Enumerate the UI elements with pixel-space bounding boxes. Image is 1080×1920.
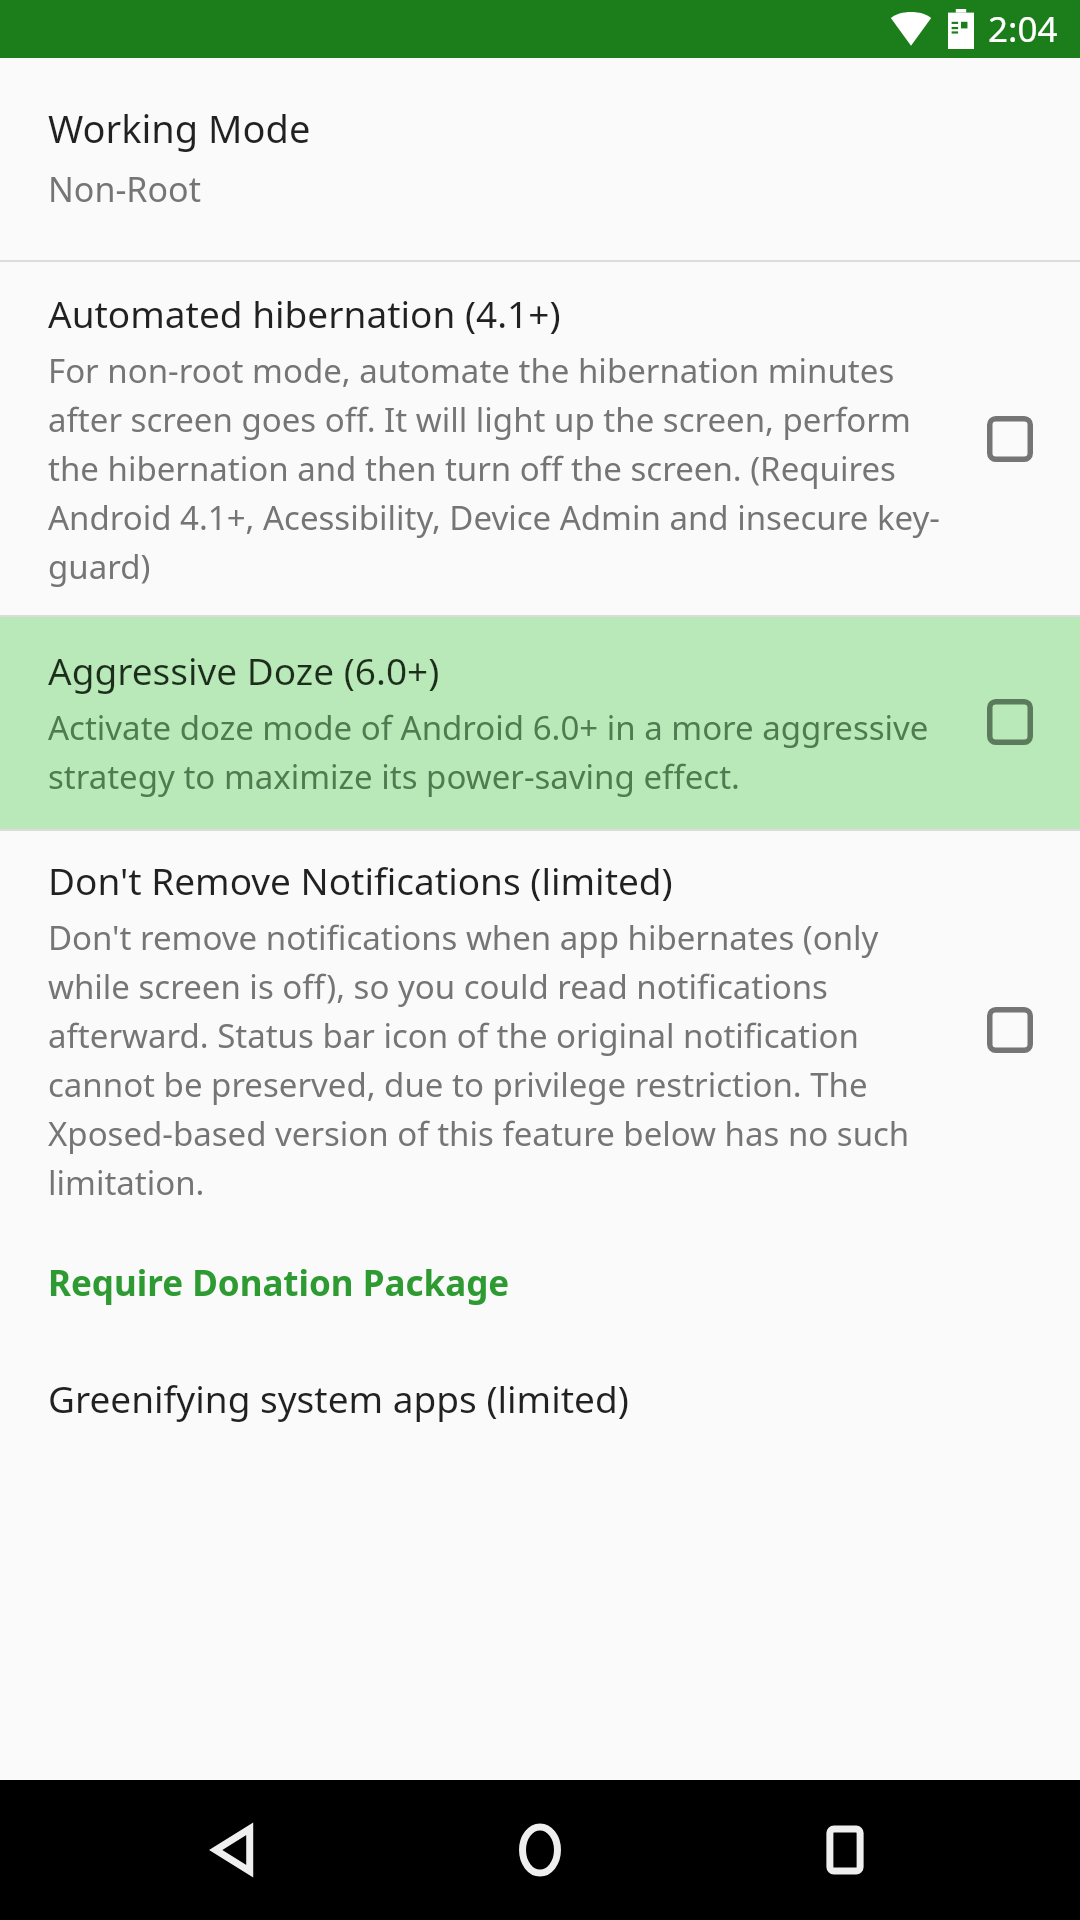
button[interactable]: Require Donation Package bbox=[0, 1219, 1080, 1325]
staticText: Require Donation Package bbox=[48, 1259, 510, 1307]
button[interactable]: Working Mode bbox=[0, 58, 1080, 260]
button[interactable]: Toggle setting bbox=[972, 684, 1048, 760]
button[interactable]: Aggressive Doze (6.0+) bbox=[0, 617, 1080, 829]
button[interactable]: Back bbox=[165, 1780, 305, 1920]
staticText: Aggressive Doze (6.0+) bbox=[48, 645, 440, 695]
button[interactable]: Automated hibernation (4.1+) bbox=[0, 262, 1080, 615]
staticText: For non-root mode, automate the hibernat… bbox=[48, 348, 948, 589]
button[interactable]: Toggle setting bbox=[972, 992, 1048, 1068]
staticText: Automated hibernation (4.1+) bbox=[48, 288, 561, 338]
button[interactable]: Greenifying system apps (limited) bbox=[0, 1325, 1080, 1423]
staticText: 2:04 bbox=[988, 5, 1058, 53]
staticText: Don't remove notifications when app hibe… bbox=[48, 915, 948, 1205]
staticText: Working Mode bbox=[48, 102, 311, 154]
button[interactable]: Home bbox=[470, 1780, 610, 1920]
button[interactable]: Don't Remove Notifications (limited) bbox=[0, 831, 1080, 1219]
button[interactable]: Toggle setting bbox=[972, 401, 1048, 477]
staticText: Non-Root bbox=[48, 166, 201, 212]
staticText: Don't Remove Notifications (limited) bbox=[48, 855, 673, 905]
button[interactable]: Recent apps bbox=[775, 1780, 915, 1920]
staticText: Activate doze mode of Android 6.0+ in a … bbox=[48, 705, 948, 799]
staticText: Greenifying system apps (limited) bbox=[48, 1373, 629, 1423]
